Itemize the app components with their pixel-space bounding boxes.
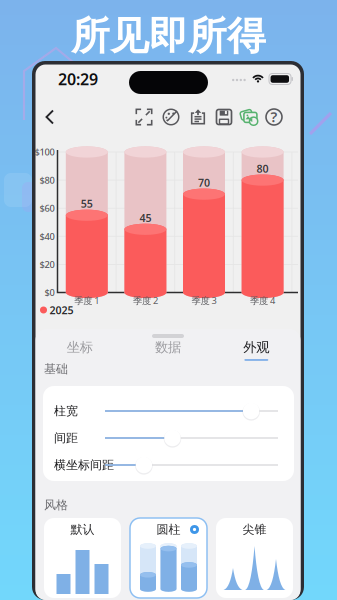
button[interactable]: Export [0, 0, 337, 600]
button[interactable]: 默认 [0, 0, 337, 600]
staticText: 季度 2 [133, 294, 158, 307]
staticText: 45 [139, 211, 151, 225]
staticText: 所见即所得 [71, 12, 266, 60]
button[interactable]: 尖锥 [0, 0, 337, 600]
staticText: 默认 [70, 522, 94, 537]
staticText: 尖锥 [242, 522, 266, 537]
staticText: 圆柱 [156, 522, 180, 537]
staticText: 间距 [54, 431, 78, 445]
staticText: 基础 [44, 362, 68, 376]
staticText: 横坐标间距 [54, 458, 114, 472]
staticText: 风格 [44, 498, 68, 512]
staticText: 季度 1 [74, 294, 99, 307]
button[interactable]: Save [0, 0, 337, 600]
button[interactable]: Help [0, 0, 337, 600]
button[interactable]: 数据 [0, 0, 337, 600]
staticText: $20 [39, 258, 54, 271]
staticText: 55 [81, 197, 93, 211]
staticText: $80 [39, 174, 54, 186]
staticText: 70 [198, 176, 210, 190]
staticText: 坐标 [67, 339, 93, 356]
button[interactable]: Fullscreen [0, 0, 337, 600]
staticText: 柱宽 [54, 404, 78, 418]
button[interactable]: Photos [0, 0, 337, 600]
button[interactable]: 坐标 [0, 0, 337, 600]
staticText: 外观 [243, 339, 269, 356]
staticText: $0 [44, 286, 54, 299]
staticText: 季度 3 [191, 294, 216, 307]
staticText: ? [270, 107, 277, 126]
staticText: 数据 [155, 339, 181, 356]
staticText: 80 [257, 161, 269, 176]
staticText: $100 [34, 146, 54, 158]
staticText: 季度 4 [250, 294, 275, 307]
button[interactable]: 圆柱 [0, 0, 337, 600]
staticText: $60 [39, 202, 54, 214]
button[interactable]: Theme [0, 0, 337, 600]
staticText: $40 [39, 230, 54, 242]
button[interactable]: Back [0, 0, 337, 600]
button[interactable]: 外观 [0, 0, 337, 600]
staticText: 2025 [49, 303, 73, 317]
staticText: 20:29 [58, 68, 98, 90]
